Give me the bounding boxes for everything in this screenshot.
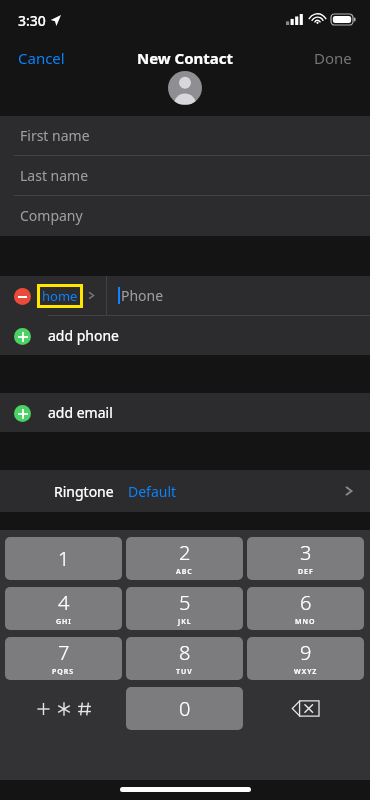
button[interactable]: home xyxy=(37,284,83,308)
staticText: 3:30 xyxy=(18,11,46,30)
button[interactable]: add phone xyxy=(0,316,370,355)
button[interactable]: 9 xyxy=(247,637,364,680)
staticText: add email xyxy=(48,403,113,422)
staticText: PQRS xyxy=(52,667,75,677)
button[interactable]: 4 xyxy=(5,587,122,630)
staticText: 2 xyxy=(179,539,191,566)
staticText: WXYZ xyxy=(294,667,318,677)
button[interactable]: Done xyxy=(304,44,362,72)
button[interactable]: Add photo xyxy=(168,71,202,105)
staticText: Ringtone xyxy=(54,482,114,501)
button[interactable]: Cancel xyxy=(8,44,75,72)
staticText: 6 xyxy=(300,589,312,616)
staticText: add phone xyxy=(48,326,119,345)
staticText: 3 xyxy=(300,539,312,566)
staticText: GHI xyxy=(56,617,72,627)
staticText: 8 xyxy=(179,639,191,666)
staticText: Company xyxy=(20,206,83,225)
staticText: Phone xyxy=(121,286,164,305)
staticText: 7 xyxy=(58,639,70,666)
staticText: New Contact xyxy=(137,48,234,68)
button[interactable]: 8 xyxy=(126,637,243,680)
button[interactable]: 0 xyxy=(126,687,243,730)
button[interactable]: Delete xyxy=(247,687,364,730)
button[interactable]: Remove phone xyxy=(10,284,34,308)
button[interactable]: Ringtone xyxy=(0,470,370,512)
staticText: 0 xyxy=(179,695,191,722)
staticText: Default xyxy=(128,482,177,501)
button[interactable]: Plus star hash xyxy=(5,687,122,730)
staticText: TUV xyxy=(176,667,193,677)
staticText: MNO xyxy=(295,617,316,627)
staticText: DEF xyxy=(298,567,314,577)
button[interactable]: 2 xyxy=(126,537,243,580)
staticText: ABC xyxy=(176,567,193,577)
button[interactable]: 7 xyxy=(5,637,122,680)
staticText: 1 xyxy=(58,545,70,572)
button[interactable]: 3 xyxy=(247,537,364,580)
staticText: 5 xyxy=(179,589,191,616)
button[interactable]: Phone xyxy=(107,286,370,305)
button[interactable]: add email xyxy=(0,393,370,432)
staticText: 9 xyxy=(300,639,312,666)
staticText: home xyxy=(42,287,78,305)
staticText: Done xyxy=(314,48,352,68)
button[interactable]: Company xyxy=(0,196,370,235)
staticText: First name xyxy=(20,126,90,145)
button[interactable]: 1 xyxy=(5,537,122,580)
staticText: Cancel xyxy=(18,48,65,68)
button[interactable]: 6 xyxy=(247,587,364,630)
staticText: Last name xyxy=(20,166,89,185)
button[interactable]: Last name xyxy=(0,156,370,195)
staticText: 4 xyxy=(58,589,70,616)
button[interactable]: 5 xyxy=(126,587,243,630)
button[interactable]: First name xyxy=(0,116,370,155)
staticText: JKL xyxy=(178,617,192,627)
